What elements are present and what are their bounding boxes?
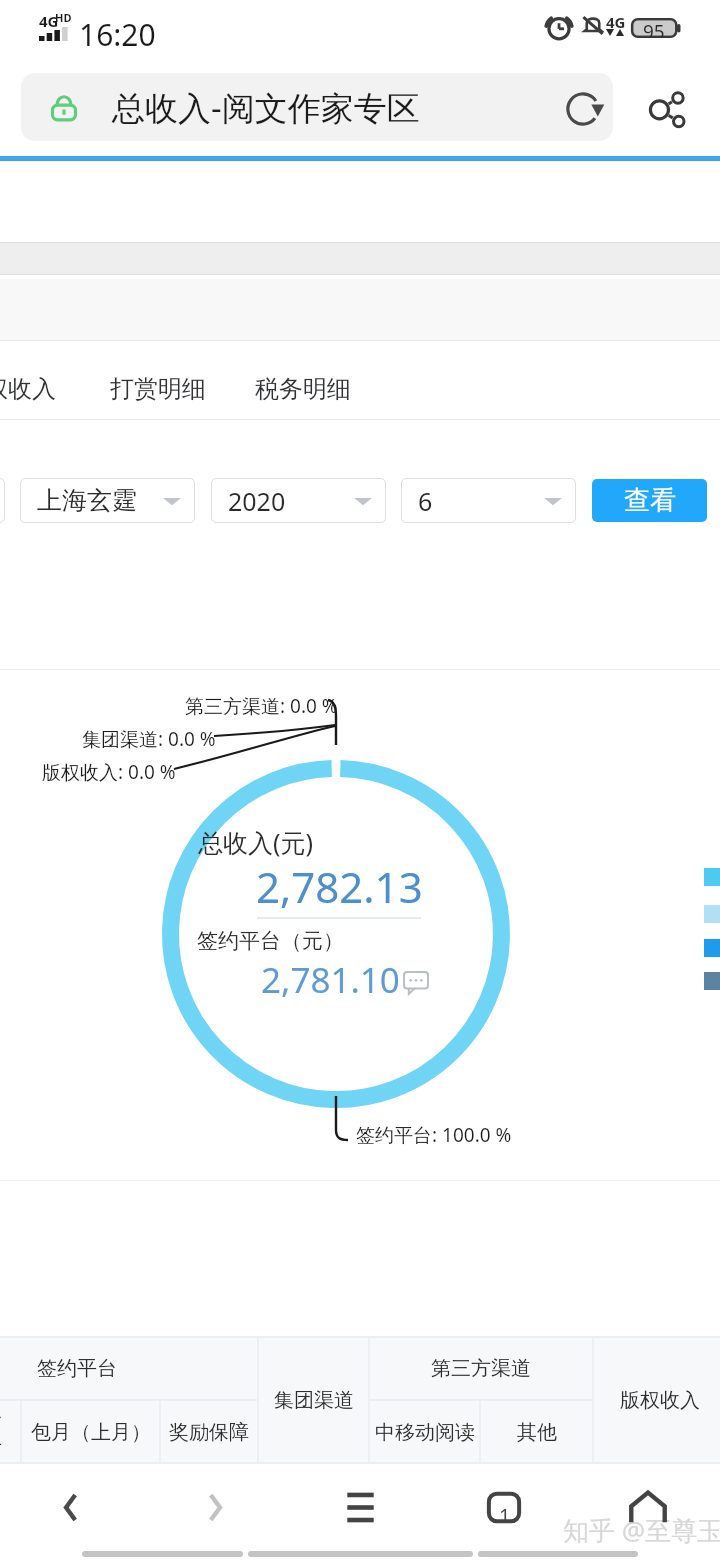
- staticText: 知乎 @至尊玉: [563, 1512, 720, 1548]
- staticText: 1: [499, 1502, 511, 1529]
- staticText: 签约平台: [37, 1356, 117, 1381]
- staticText: 版权收入: [620, 1388, 700, 1413]
- button[interactable]: 6: [401, 478, 576, 523]
- button[interactable]: [0, 478, 5, 523]
- staticText: 签约平台（元）: [197, 928, 344, 954]
- button[interactable]: Share: [637, 79, 697, 139]
- staticText: 分册: [0, 1406, 21, 1458]
- staticText: 集团渠道: [274, 1388, 354, 1413]
- button[interactable]: Refresh: [553, 79, 613, 139]
- button[interactable]: Tabs: [454, 1470, 554, 1544]
- staticText: 第三方渠道: 0.0 %: [185, 693, 338, 719]
- staticText: 4G: [39, 11, 59, 31]
- staticText: 包月（上月）: [31, 1420, 151, 1445]
- staticText: 95: [643, 19, 665, 37]
- staticText: 2020: [228, 484, 286, 518]
- button[interactable]: 总收入-阅文作家专区: [21, 73, 613, 141]
- staticText: HD: [55, 10, 72, 25]
- button[interactable]: Back: [21, 1470, 121, 1544]
- staticText: 奖励保障: [169, 1420, 249, 1445]
- staticText: 打赏明细: [110, 374, 206, 404]
- button[interactable]: 税务明细: [248, 366, 358, 412]
- staticText: 总收入-阅文作家专区: [112, 85, 420, 130]
- button[interactable]: 2020: [211, 478, 386, 523]
- staticText: 其他: [517, 1420, 557, 1445]
- staticText: 2,782.13: [256, 858, 423, 915]
- button[interactable]: Home: [598, 1470, 698, 1544]
- staticText: 上海玄霆: [37, 485, 137, 516]
- staticText: 16:20: [79, 14, 156, 55]
- staticText: 第三方渠道: [431, 1356, 531, 1381]
- button[interactable]: Menu: [310, 1470, 410, 1544]
- staticText: 税务明细: [255, 374, 351, 404]
- staticText: 4G: [606, 12, 626, 32]
- staticText: 2,781.10: [261, 956, 400, 1004]
- button[interactable]: 上海玄霆: [20, 478, 195, 523]
- staticText: 版权收入: 0.0 %: [42, 759, 176, 785]
- staticText: 6: [418, 484, 433, 518]
- staticText: 签约平台: 100.0 %: [356, 1122, 512, 1148]
- button[interactable]: 版权收入: [0, 366, 63, 412]
- button[interactable]: 查看: [592, 479, 707, 522]
- staticText: 中移动阅读: [375, 1420, 475, 1445]
- button[interactable]: 打赏明细: [103, 366, 213, 412]
- staticText: 集团渠道: 0.0 %: [82, 726, 216, 752]
- button[interactable]: Forward: [165, 1470, 265, 1544]
- staticText: 查看: [624, 484, 676, 517]
- staticText: 总收入(元): [198, 825, 314, 859]
- staticText: 版权收入: [0, 374, 56, 404]
